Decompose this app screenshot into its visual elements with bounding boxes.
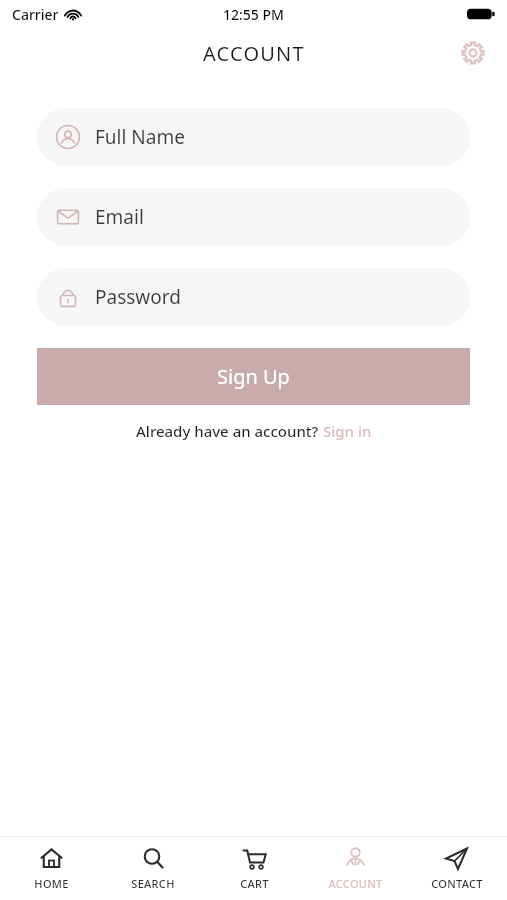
button[interactable]: Full Name [37, 108, 470, 166]
button[interactable]: Sign in [323, 421, 372, 441]
staticText: 12:55 PM [223, 5, 284, 24]
staticText: CART [240, 876, 269, 891]
button[interactable]: Settings [455, 35, 491, 71]
button[interactable]: Password [37, 268, 470, 326]
staticText: Sign in [323, 421, 372, 441]
staticText: ACCOUNT [203, 40, 305, 67]
staticText: SEARCH [131, 876, 175, 891]
staticText: Email [95, 204, 144, 230]
staticText: CONTACT [431, 876, 483, 891]
button[interactable]: SEARCH [102, 837, 204, 900]
button[interactable]: Email [37, 188, 470, 246]
staticText: ACCOUNT [328, 876, 383, 891]
button[interactable]: HOME [0, 837, 102, 900]
button[interactable]: CONTACT [406, 837, 507, 900]
staticText: Password [95, 284, 181, 310]
button[interactable]: ACCOUNT [305, 837, 406, 900]
button[interactable]: Sign Up [37, 348, 470, 405]
staticText: Sign Up [217, 363, 290, 390]
staticText: Full Name [95, 124, 185, 150]
staticText: HOME [34, 876, 69, 891]
staticText: Carrier [12, 5, 59, 24]
staticText: Already have an account? [136, 421, 323, 441]
button[interactable]: CART [204, 837, 305, 900]
